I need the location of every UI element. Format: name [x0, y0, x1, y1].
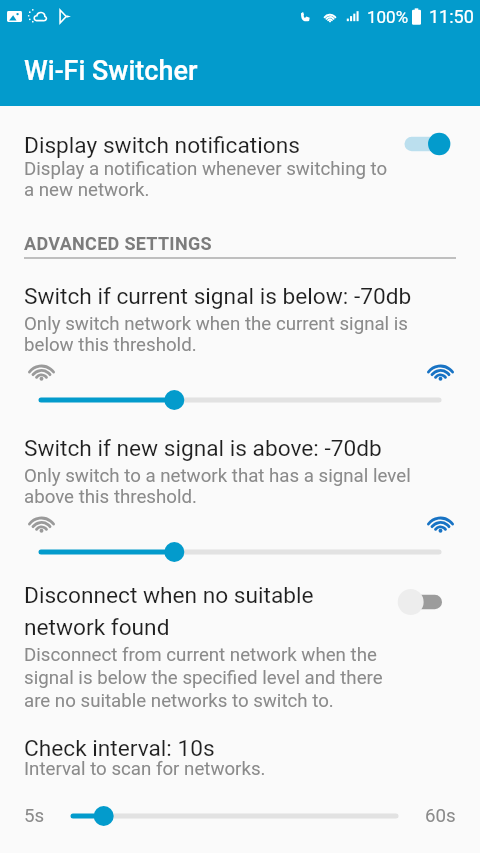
- button[interactable]: Switch if current signal is below: -70db: [0, 283, 480, 411]
- staticText: Only switch to a network that has a sign…: [24, 465, 456, 507]
- staticText: Only switch network when the current sig…: [24, 313, 456, 355]
- staticText: 60s: [425, 805, 456, 827]
- button[interactable]: Slider: [56, 805, 413, 827]
- staticText: Switch if new signal is above: -70db: [24, 435, 382, 462]
- staticText: 5s: [24, 805, 45, 827]
- staticText: 11:50: [429, 6, 474, 27]
- staticText: ADVANCED SETTINGS: [24, 233, 212, 254]
- staticText: Check interval: 10s: [24, 735, 215, 762]
- staticText: 100%: [367, 7, 409, 27]
- staticText: Display a notification whenever switchin…: [24, 158, 390, 200]
- staticText: Disconnect when no suitable network foun…: [24, 582, 370, 641]
- button[interactable]: Slider: [24, 389, 456, 411]
- button[interactable]: Check interval: 10s: [0, 731, 480, 780]
- button[interactable]: Display switch notifications: [0, 128, 480, 200]
- button[interactable]: Display switch notifications, on: [400, 126, 456, 162]
- button[interactable]: Slider: [24, 541, 456, 563]
- staticText: Disconnect from current network when the…: [24, 644, 390, 711]
- button[interactable]: Disconnect when no suitable network foun…: [0, 582, 480, 711]
- staticText: Display switch notifications: [24, 132, 300, 159]
- button[interactable]: Switch if new signal is above: -70db: [0, 435, 480, 563]
- staticText: Wi-Fi Switcher: [24, 55, 198, 87]
- staticText: Switch if current signal is below: -70db: [24, 283, 412, 310]
- staticText: Interval to scan for networks.: [24, 758, 266, 780]
- button[interactable]: Disconnect when no suitable network foun…: [395, 584, 451, 620]
